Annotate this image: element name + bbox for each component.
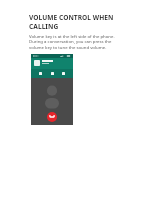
button[interactable]: Keypad	[50, 71, 55, 76]
button[interactable]: Speaker	[61, 71, 66, 76]
staticText: Volume key is at the left side of the ph…	[29, 33, 123, 51]
button[interactable]: Mute	[38, 71, 43, 76]
button[interactable]: End call	[47, 112, 57, 122]
staticText: VOLUME CONTROL WHEN CALLING	[29, 13, 140, 31]
